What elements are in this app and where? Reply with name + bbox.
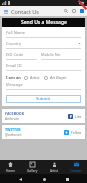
staticText: Email ID [6,63,22,68]
button[interactable]: FACEBOOK [2,109,85,123]
button[interactable]: Artist [43,160,65,174]
staticText: Artforum [5,117,19,121]
staticText: ISD Code [6,52,24,57]
staticText: Send Us a Message [21,19,67,26]
staticText: Like [75,114,82,119]
button[interactable]: Country [6,41,81,46]
button[interactable]: Mobile No [41,52,81,57]
staticText: f [70,114,72,119]
button[interactable]: TWITTER [2,125,85,139]
button[interactable]: Cart [71,8,77,14]
button[interactable]: Full Name [6,30,81,35]
staticText: Contact Us [11,8,39,15]
button[interactable]: Artist [24,75,40,80]
button[interactable]: Back [16,175,24,183]
button[interactable]: Art Buyer [44,75,67,80]
staticText: Full Name [6,30,25,35]
button[interactable]: Submit [6,95,81,103]
button[interactable]: Search [63,8,69,14]
button[interactable]: Home [40,175,48,183]
button[interactable]: Contact [65,160,87,174]
button[interactable]: ISD Code [6,52,37,57]
staticText: Message [6,82,23,87]
button[interactable]: Home [0,160,21,174]
staticText: Artist [50,169,59,173]
staticText: @artforum [5,133,22,137]
button[interactable]: Gallery [21,160,43,174]
staticText: Mobile No [41,52,61,57]
staticText: I am an [6,75,21,80]
staticText: Follow [71,130,82,135]
staticText: Contact [70,169,82,173]
button[interactable]: Email ID [6,63,81,68]
staticText: FACEBOOK [5,111,25,116]
staticText: Country [6,41,22,46]
button[interactable]: Account [79,8,85,14]
button[interactable]: Message [6,82,81,87]
staticText: Submit [36,96,51,102]
staticText: Home [6,169,16,173]
staticText: TWITTER [5,127,21,132]
staticText: Gallery [27,169,38,173]
staticText: Art Buyer [50,75,67,80]
button[interactable]: Menu [3,9,9,15]
staticText: Artist [30,75,40,80]
button[interactable]: Recents [63,175,71,183]
